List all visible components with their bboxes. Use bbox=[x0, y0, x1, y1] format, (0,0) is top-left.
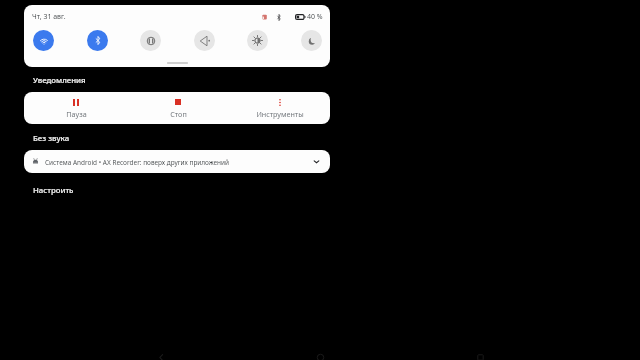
staticText: Стоп bbox=[170, 109, 187, 119]
button[interactable]: Recents bbox=[472, 349, 488, 360]
button[interactable] bbox=[24, 150, 330, 173]
button[interactable]: Back bbox=[153, 349, 169, 360]
button[interactable]: Auto brightness bbox=[247, 30, 268, 51]
button[interactable]: Night light bbox=[301, 30, 322, 51]
staticText: Настроить bbox=[33, 185, 74, 196]
button[interactable]: Настроить bbox=[28, 181, 80, 195]
button[interactable]: Стоп bbox=[133, 92, 223, 124]
staticText: Пауза bbox=[66, 109, 87, 119]
staticText: Чт, 31 авг. bbox=[32, 12, 66, 22]
button[interactable]: Dark theme bbox=[140, 30, 161, 51]
staticText: Система Android • AX Recorder: поверх др… bbox=[45, 158, 307, 167]
staticText: Инструменты bbox=[256, 109, 304, 119]
button[interactable]: Wi-Fi bbox=[33, 30, 54, 51]
button[interactable] bbox=[24, 92, 330, 124]
button[interactable]: Home bbox=[312, 349, 328, 360]
staticText: Без звука bbox=[33, 133, 70, 144]
staticText: Уведомления bbox=[33, 75, 86, 86]
button[interactable]: Инструменты bbox=[235, 92, 325, 124]
button[interactable]: Sound bbox=[194, 30, 215, 51]
staticText: 40 % bbox=[307, 12, 323, 22]
button[interactable]: Expand notification bbox=[311, 156, 322, 167]
button[interactable]: Bluetooth bbox=[87, 30, 108, 51]
button[interactable]: Пауза bbox=[31, 92, 121, 124]
